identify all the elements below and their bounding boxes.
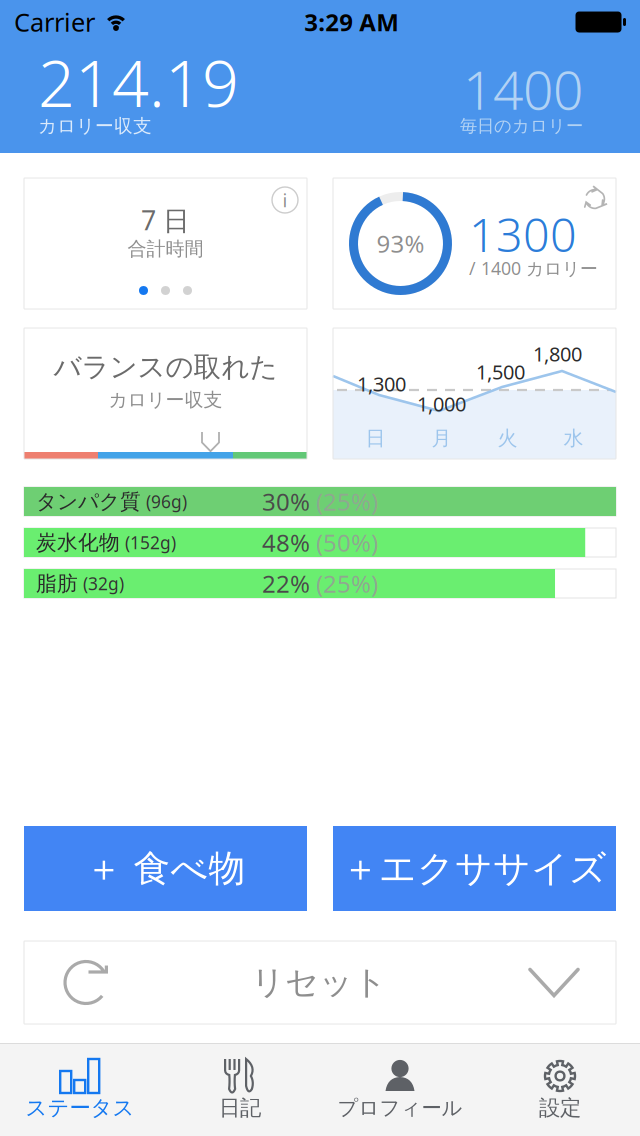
staticText: リセット xyxy=(251,961,387,1003)
staticText: 3:29 AM xyxy=(304,6,399,38)
staticText: 日記 xyxy=(219,1095,261,1121)
staticText: 火 xyxy=(497,426,517,451)
staticText: ＋エクササイズ xyxy=(342,845,607,892)
staticText: (25%) xyxy=(310,485,378,518)
staticText: (50%) xyxy=(310,526,378,559)
button[interactable]: Info xyxy=(265,180,305,220)
staticText: カロリー収支 xyxy=(38,114,152,138)
staticText: プロフィール xyxy=(337,1095,462,1121)
staticText: ＋ 食べ物 xyxy=(85,845,245,892)
button[interactable]: ＋ 食べ物 xyxy=(24,826,307,911)
staticText: 1,300 xyxy=(357,370,406,397)
button[interactable]: ステータス xyxy=(0,1044,160,1136)
staticText: 1400 xyxy=(463,53,583,125)
staticText: バランスの取れた xyxy=(53,350,277,384)
staticText: Carrier xyxy=(14,5,95,39)
staticText: 214.19 xyxy=(38,38,239,126)
staticText: タンパク質 xyxy=(36,488,141,514)
button[interactable]: リセット xyxy=(24,941,616,1024)
staticText: 設定 xyxy=(539,1095,581,1121)
staticText: 1,000 xyxy=(417,390,466,417)
button[interactable]: Sync xyxy=(574,178,616,220)
staticText: 水 xyxy=(563,426,583,451)
staticText: 1300 xyxy=(469,202,577,266)
staticText: カロリー収支 xyxy=(108,388,222,412)
staticText: 脂肪 xyxy=(36,570,78,596)
button[interactable]: 日記 xyxy=(160,1044,320,1136)
staticText: 月 xyxy=(431,426,451,451)
staticText: (152g) xyxy=(120,531,176,554)
staticText: 日 xyxy=(365,426,385,451)
staticText: 毎日のカロリー xyxy=(460,115,583,137)
button[interactable]: 設定 xyxy=(480,1044,640,1136)
staticText: 48% xyxy=(262,526,310,559)
staticText: (25%) xyxy=(310,567,378,600)
staticText: 1,800 xyxy=(533,340,582,367)
button[interactable]: ＋エクササイズ xyxy=(333,826,616,911)
staticText: 93% xyxy=(376,227,424,260)
staticText: i xyxy=(282,187,287,213)
staticText: 7 日 xyxy=(141,202,190,238)
button[interactable]: プロフィール xyxy=(320,1044,480,1136)
staticText: / 1400 カロリー xyxy=(469,256,598,280)
staticText: (32g) xyxy=(78,572,124,595)
staticText: 合計時間 xyxy=(127,237,203,261)
staticText: (96g) xyxy=(141,490,187,513)
staticText: ステータス xyxy=(25,1095,134,1121)
staticText: 22% xyxy=(262,567,310,600)
staticText: 炭水化物 xyxy=(36,529,120,555)
staticText: 1,500 xyxy=(476,358,525,385)
staticText: 30% xyxy=(262,485,310,518)
